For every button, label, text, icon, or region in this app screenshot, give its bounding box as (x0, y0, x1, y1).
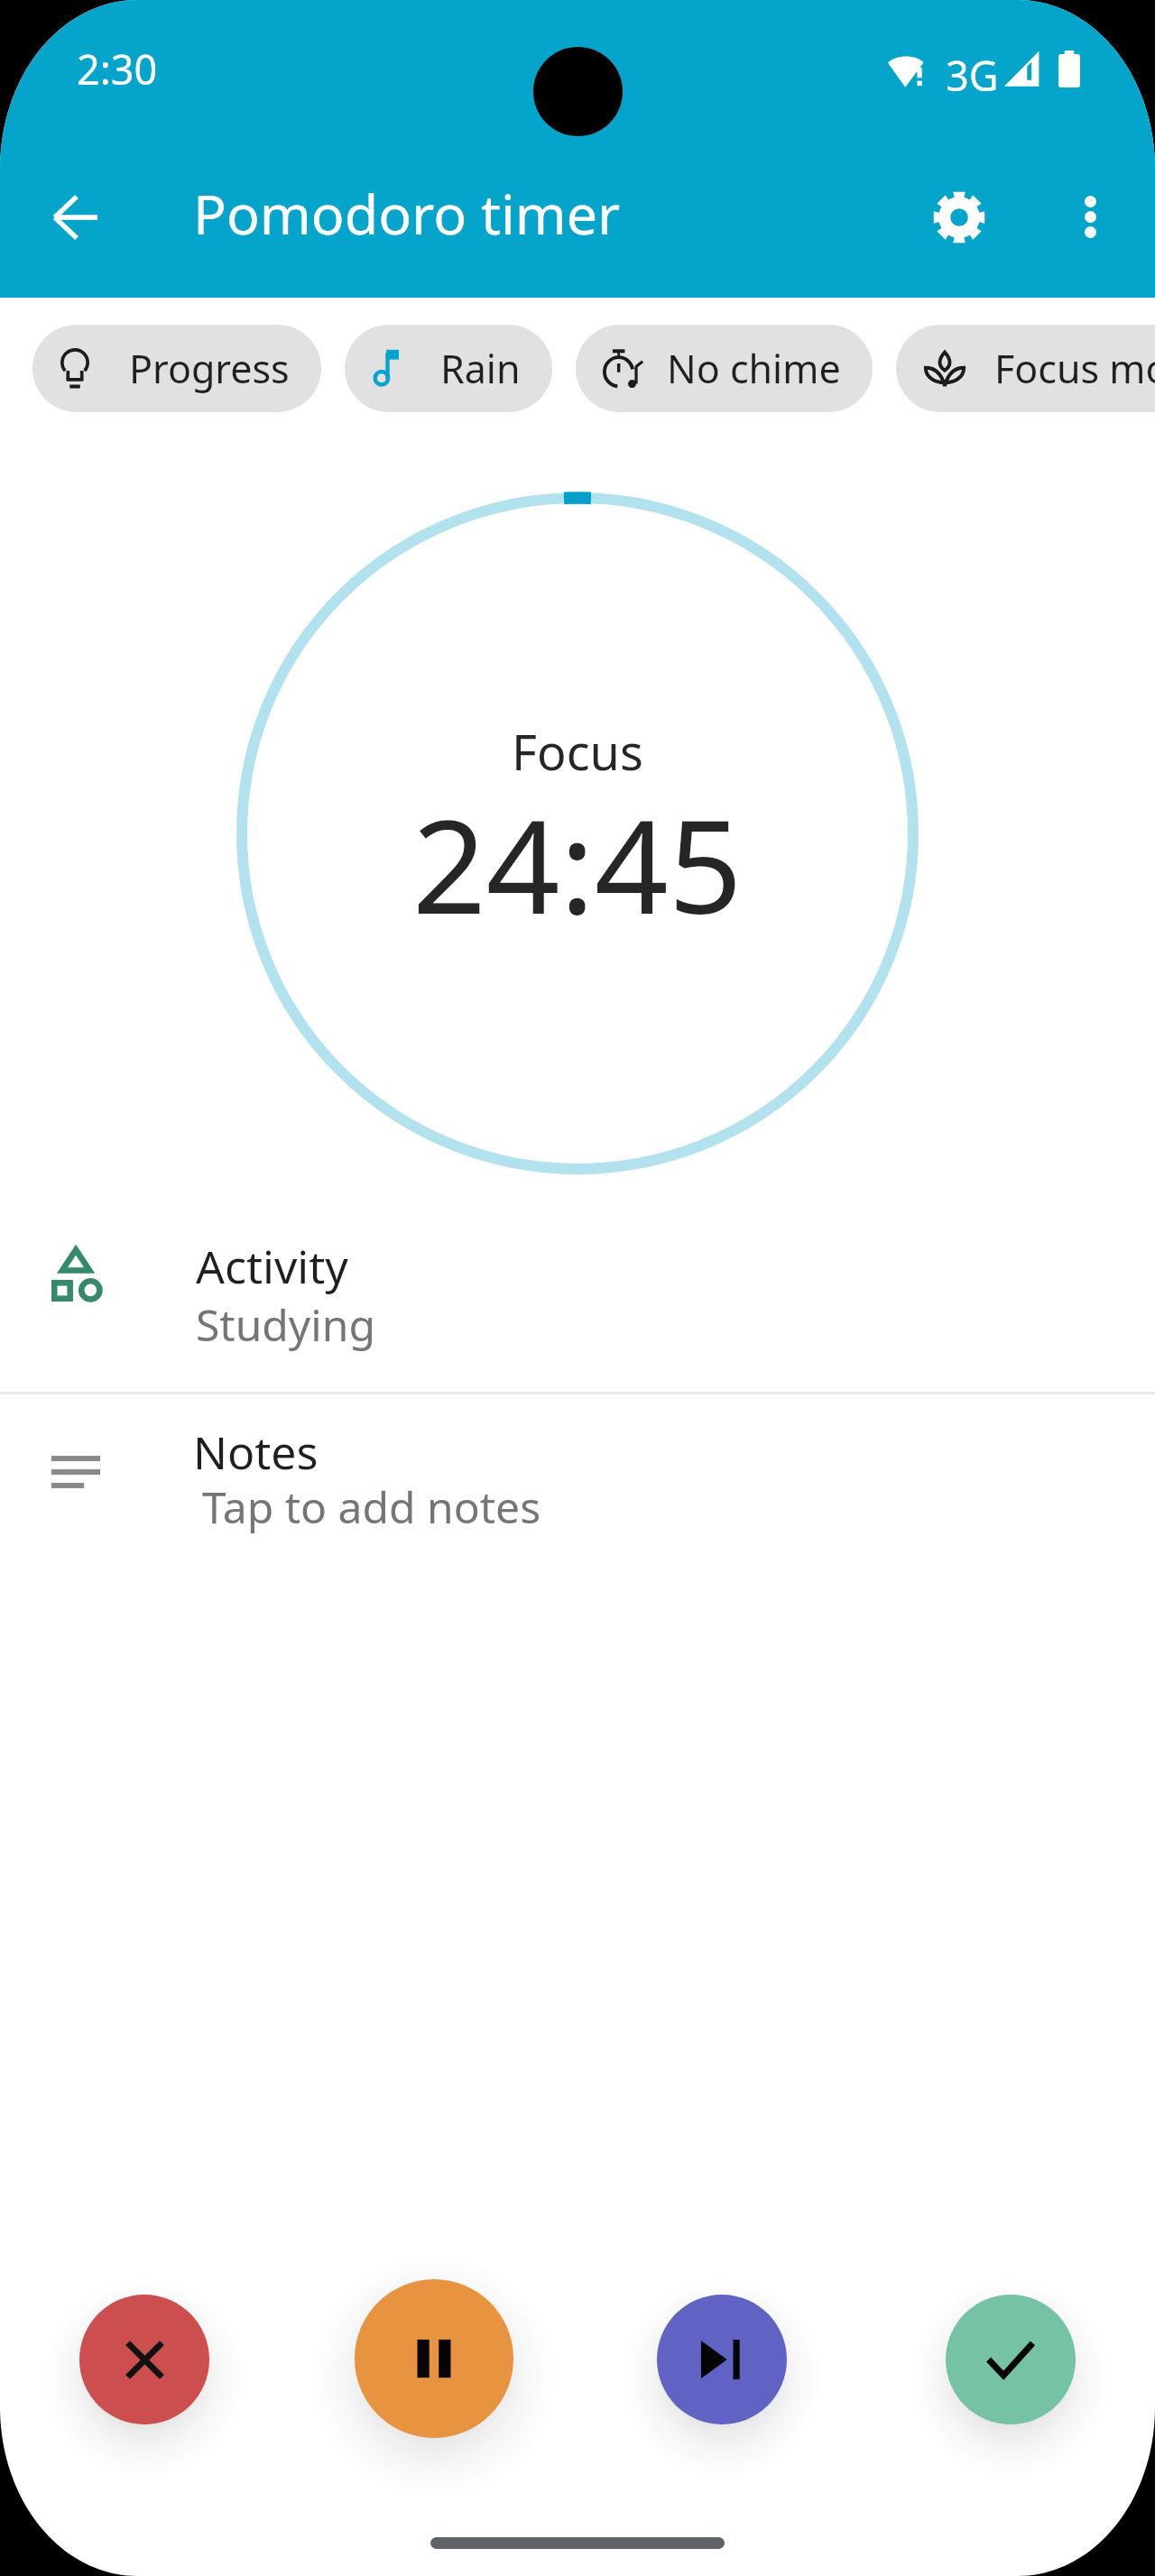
button[interactable]: Progress (32, 325, 321, 412)
staticText: Studying (196, 1295, 375, 1354)
button[interactable]: Skip (657, 2295, 787, 2424)
staticText: 2:30 (77, 41, 158, 97)
button[interactable]: Done (946, 2295, 1076, 2424)
button[interactable]: Stop (79, 2295, 209, 2424)
staticText: No chime (667, 342, 841, 395)
button[interactable]: Notes (0, 1394, 1155, 1570)
staticText: Rain (440, 342, 521, 395)
staticText: Pomodoro timer (193, 176, 621, 251)
button[interactable]: No chime (576, 325, 873, 412)
button[interactable]: More options (1046, 172, 1134, 261)
button[interactable]: Focus mode (896, 325, 1155, 412)
button[interactable]: Pause (355, 2279, 513, 2438)
staticText: Focus mode (994, 342, 1155, 395)
button[interactable]: Back (31, 173, 119, 262)
staticText: 24:45 (412, 776, 743, 952)
button[interactable]: Rain (345, 325, 552, 412)
button[interactable]: Settings (915, 173, 1003, 262)
staticText: Activity (196, 1236, 348, 1297)
staticText: Progress (129, 342, 290, 395)
staticText: Tap to add notes (202, 1477, 541, 1536)
staticText: 3G (946, 48, 999, 103)
staticText: Focus (512, 718, 643, 785)
staticText: Notes (193, 1421, 319, 1483)
button[interactable]: Activity (0, 1216, 1155, 1392)
